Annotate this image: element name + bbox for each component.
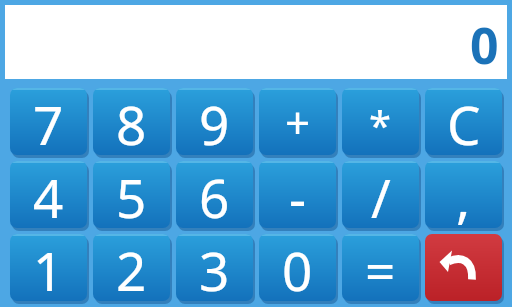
button[interactable]: 5	[93, 161, 170, 228]
staticText: 7	[33, 88, 64, 155]
staticText: 2	[116, 234, 147, 301]
staticText: +	[285, 92, 311, 152]
staticText: ,	[456, 161, 471, 228]
staticText: 0	[282, 234, 313, 301]
staticText: 3	[199, 234, 230, 301]
staticText: *	[369, 97, 392, 151]
button[interactable]: *	[342, 88, 419, 155]
staticText: 6	[199, 161, 230, 228]
button[interactable]: 6	[176, 161, 253, 228]
button[interactable]: 0	[259, 234, 336, 301]
staticText: C	[447, 88, 481, 155]
staticText: 4	[33, 161, 64, 228]
button[interactable]: 4	[10, 161, 87, 228]
button[interactable]: /	[342, 161, 419, 228]
button[interactable]: -	[259, 161, 336, 228]
staticText: -	[289, 161, 307, 228]
button[interactable]: 9	[176, 88, 253, 155]
staticText: =	[365, 234, 396, 301]
staticText: /	[371, 161, 391, 228]
staticText: 9	[199, 88, 230, 155]
button[interactable]: 3	[176, 234, 253, 301]
staticText: 1	[33, 234, 64, 301]
button[interactable]: ,	[425, 161, 502, 228]
staticText: 5	[116, 161, 147, 228]
staticText: 8	[116, 88, 147, 155]
button[interactable]: 1	[10, 234, 87, 301]
button[interactable]: +	[259, 88, 336, 155]
button[interactable]: =	[342, 234, 419, 301]
button[interactable]: C	[425, 88, 502, 155]
button[interactable]	[425, 234, 502, 301]
button[interactable]: 7	[10, 88, 87, 155]
button[interactable]: 8	[93, 88, 170, 155]
button[interactable]: 2	[93, 234, 170, 301]
staticText: 0	[470, 11, 499, 79]
